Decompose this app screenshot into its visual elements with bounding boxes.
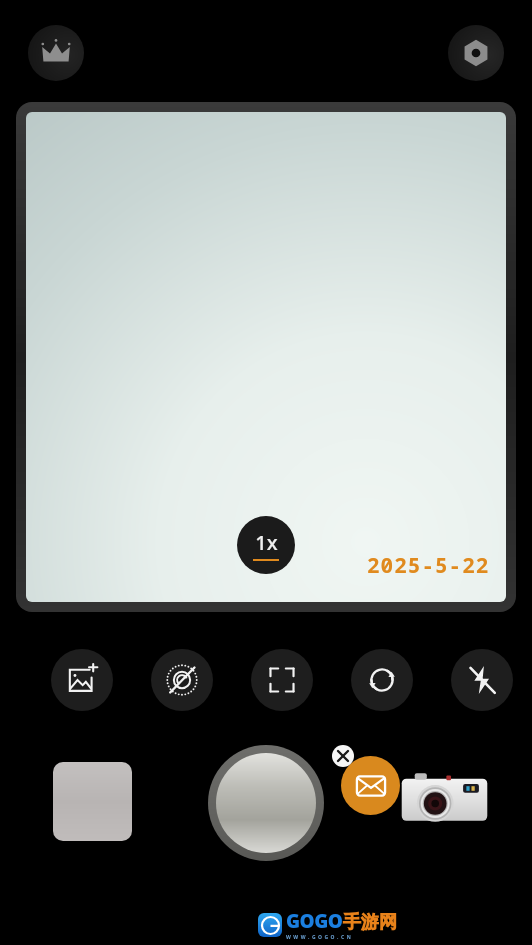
button[interactable]: Shutter — [208, 745, 324, 861]
button[interactable]: Premium — [28, 25, 84, 81]
button[interactable]: Flash off — [451, 649, 513, 711]
staticText: 手游网 — [343, 911, 397, 934]
staticText: 1x — [255, 529, 278, 556]
staticText: GOGO — [286, 908, 343, 934]
button[interactable]: Aspect ratio — [251, 649, 313, 711]
button[interactable]: Add photo — [51, 649, 113, 711]
button[interactable]: Mail advertisement — [341, 756, 400, 815]
button[interactable]: Settings — [448, 25, 504, 81]
staticText: W W W . G O G O . C N — [286, 934, 352, 941]
button[interactable]: Gallery — [53, 762, 132, 841]
button[interactable]: 1x — [237, 516, 295, 574]
button[interactable]: Close ad — [332, 745, 354, 767]
button[interactable]: Filters off — [151, 649, 213, 711]
button[interactable]: Switch camera — [351, 649, 413, 711]
button[interactable] — [398, 770, 491, 824]
button[interactable]: 2025-5-22 — [26, 112, 506, 602]
staticText: 2025-5-22 — [367, 551, 490, 580]
